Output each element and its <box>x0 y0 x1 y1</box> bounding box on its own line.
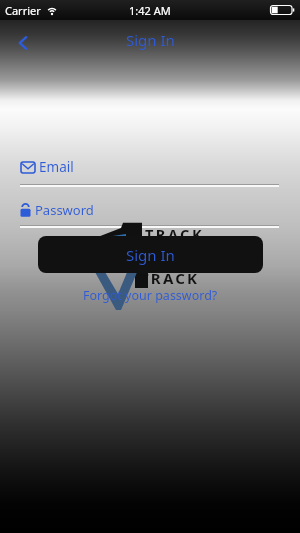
staticText: Sign In <box>126 245 175 265</box>
button[interactable] <box>8 28 38 58</box>
staticText: Email <box>39 158 74 176</box>
staticText: Forgot your password? <box>83 287 218 304</box>
staticText: Sign In <box>126 30 175 50</box>
staticText: TRACK <box>140 268 200 288</box>
staticText: Password <box>35 201 94 219</box>
staticText: 1:42 AM <box>129 3 171 18</box>
staticText: TRACK <box>145 224 205 244</box>
staticText: Carrier <box>5 3 41 18</box>
button[interactable]: Email <box>21 156 281 178</box>
button[interactable]: Sign In <box>38 236 263 273</box>
button[interactable]: Password <box>20 199 280 221</box>
button[interactable]: Forgot your password? <box>83 287 218 304</box>
